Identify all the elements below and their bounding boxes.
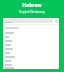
button[interactable] [3, 59, 59, 63]
button[interactable]: Search [4, 19, 58, 23]
staticText: English Dictionary [19, 10, 45, 14]
staticText: Search [5, 20, 13, 23]
button[interactable] [3, 47, 59, 51]
button[interactable] [3, 55, 59, 59]
button[interactable] [3, 63, 59, 67]
button[interactable] [3, 51, 59, 55]
button[interactable] [3, 35, 59, 39]
button[interactable] [3, 43, 59, 47]
button[interactable] [3, 39, 59, 43]
button[interactable]: Search [54, 19, 58, 23]
button[interactable] [3, 67, 59, 69]
staticText: Hebrew [22, 2, 42, 9]
button[interactable] [3, 31, 59, 35]
